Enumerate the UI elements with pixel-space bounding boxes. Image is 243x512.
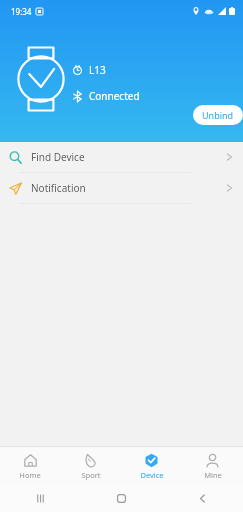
staticText: Sport	[81, 470, 101, 480]
button[interactable]: Unbind	[193, 105, 243, 125]
staticText: Find Device	[31, 150, 85, 164]
button[interactable]: Mine	[182, 450, 243, 483]
staticText: Device	[140, 470, 164, 480]
other: Home	[116, 493, 127, 504]
button[interactable]: Device	[121, 450, 182, 483]
button[interactable]: Find Device	[0, 142, 243, 172]
button[interactable]: Notification	[0, 173, 243, 203]
staticText: L13	[89, 63, 106, 77]
button[interactable]: Home	[0, 450, 60, 483]
staticText: Unbind	[202, 109, 234, 121]
staticText: Connected	[89, 89, 140, 103]
staticText: Mine	[204, 470, 222, 480]
staticText: 19:34	[11, 6, 32, 17]
staticText: Home	[19, 470, 41, 480]
other: Recent apps	[35, 493, 46, 504]
staticText: Notification	[31, 181, 86, 195]
button[interactable]: Sport	[60, 450, 121, 483]
other: Back	[197, 493, 208, 504]
